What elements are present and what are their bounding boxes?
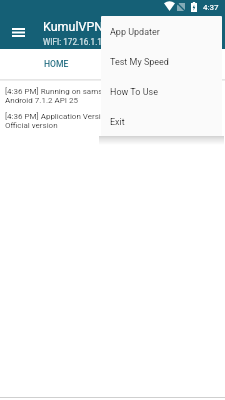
staticText: Exit <box>110 117 125 128</box>
button[interactable]: Navigation menu <box>2 16 34 48</box>
button[interactable]: Test My Speed <box>101 46 222 76</box>
button[interactable]: App Updater <box>101 16 222 46</box>
button[interactable]: How To Use <box>101 76 222 106</box>
staticText: KumulVPN <box>43 19 104 34</box>
staticText: HOME <box>44 59 69 69</box>
staticText: [4:36 PM] Running on samsung SM-G950F <box>5 87 155 96</box>
staticText: How To Use <box>110 87 158 98</box>
staticText: 4:37 <box>203 3 219 12</box>
staticText: [4:36 PM] Application Version: 3.0.1 <box>5 112 132 121</box>
staticText: Android 7.1.2 API 25 <box>5 96 78 105</box>
button[interactable]: HOME <box>0 49 113 78</box>
button[interactable]: Exit <box>101 106 222 136</box>
staticText: WIFI: 172.16.1.189 <box>43 37 112 47</box>
staticText: Test My Speed <box>110 57 169 68</box>
staticText: App Updater <box>110 27 160 38</box>
staticText: Official version <box>5 121 58 130</box>
